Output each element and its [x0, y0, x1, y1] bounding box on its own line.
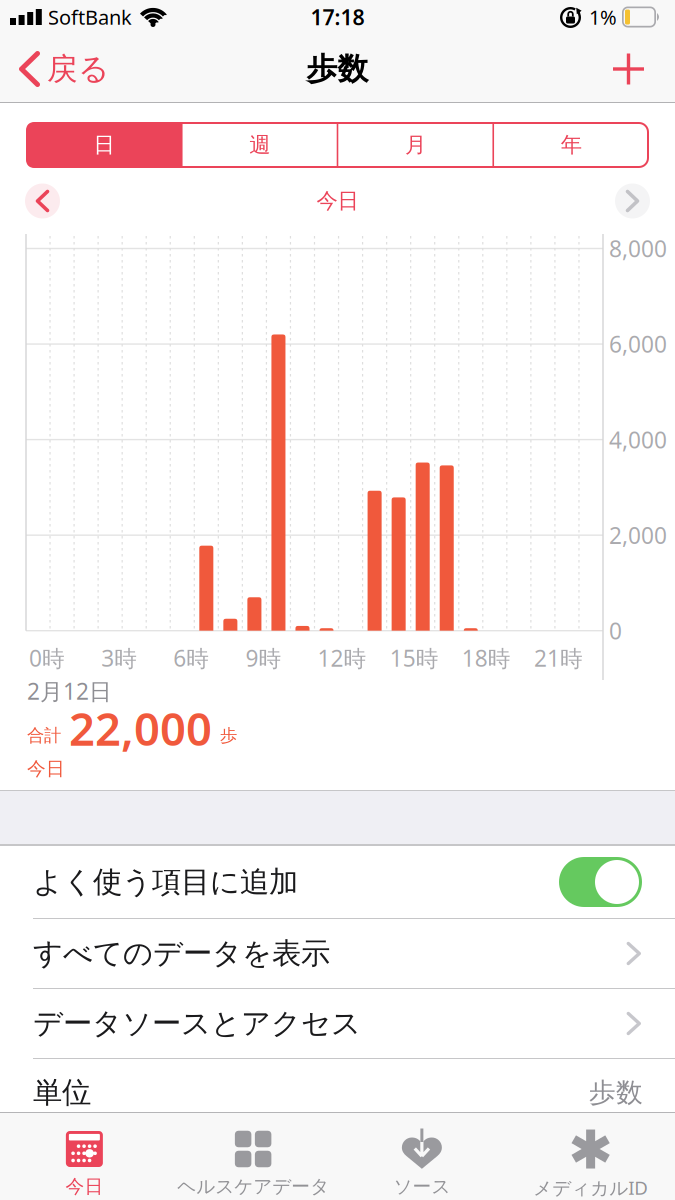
- staticText: 合計: [27, 725, 61, 746]
- staticText: すべてのデータを表示: [33, 935, 330, 971]
- staticText: 0時: [29, 643, 65, 673]
- staticText: SoftBank: [48, 4, 132, 30]
- staticText: 17:18: [310, 3, 364, 31]
- staticText: 12時: [317, 643, 366, 673]
- button[interactable]: 次の日: [615, 183, 650, 218]
- staticText: 6時: [173, 643, 209, 673]
- button[interactable]: 日: [26, 122, 182, 168]
- button[interactable]: データソースとアクセス: [0, 989, 675, 1058]
- staticText: 21時: [534, 643, 583, 673]
- button[interactable]: ソース: [337, 1113, 506, 1200]
- button[interactable]: よく使う項目に追加: [0, 846, 675, 918]
- staticText: 月: [405, 132, 426, 158]
- staticText: よく使う項目に追加: [33, 864, 298, 900]
- staticText: 6,000: [609, 329, 667, 359]
- button[interactable]: メディカルID: [506, 1113, 675, 1200]
- staticText: 歩数: [306, 50, 368, 88]
- button[interactable]: 単位: [0, 1059, 675, 1112]
- button[interactable]: すべてのデータを表示: [0, 919, 675, 988]
- staticText: 単位: [33, 1074, 91, 1110]
- staticText: 22,000: [69, 698, 212, 758]
- staticText: ヘルスケアデータ: [177, 1175, 329, 1198]
- staticText: 1%: [589, 4, 617, 30]
- button[interactable]: 追加: [613, 53, 675, 84]
- button[interactable]: 週: [182, 122, 338, 168]
- staticText: 0: [609, 616, 622, 646]
- staticText: 2月12日: [27, 676, 112, 706]
- button[interactable]: 月: [337, 122, 493, 168]
- staticText: 15時: [390, 643, 439, 673]
- staticText: 週: [249, 132, 270, 158]
- staticText: 9時: [245, 643, 281, 673]
- staticText: ソース: [393, 1175, 450, 1198]
- button[interactable]: 戻る: [0, 50, 109, 88]
- staticText: メディカルID: [533, 1175, 648, 1200]
- staticText: 3時: [101, 643, 137, 673]
- staticText: 年: [561, 132, 582, 158]
- button[interactable]: 今日: [0, 1113, 169, 1200]
- staticText: 今日: [316, 188, 358, 214]
- staticText: 今日: [27, 757, 65, 780]
- staticText: 2,000: [609, 520, 667, 550]
- button[interactable]: 今日: [316, 188, 358, 214]
- staticText: 戻る: [47, 50, 109, 88]
- staticText: 4,000: [609, 424, 667, 455]
- button[interactable]: 年: [493, 122, 649, 168]
- button[interactable]: よく使う項目に追加: [559, 857, 642, 907]
- staticText: 日: [93, 132, 114, 158]
- button[interactable]: ヘルスケアデータ: [169, 1113, 338, 1200]
- staticText: 歩: [220, 725, 237, 746]
- button[interactable]: 前の日: [25, 183, 60, 218]
- staticText: 8,000: [609, 233, 667, 263]
- staticText: 歩数: [589, 1076, 643, 1109]
- staticText: 今日: [65, 1175, 103, 1198]
- staticText: 18時: [462, 643, 511, 673]
- staticText: データソースとアクセス: [33, 1005, 361, 1041]
